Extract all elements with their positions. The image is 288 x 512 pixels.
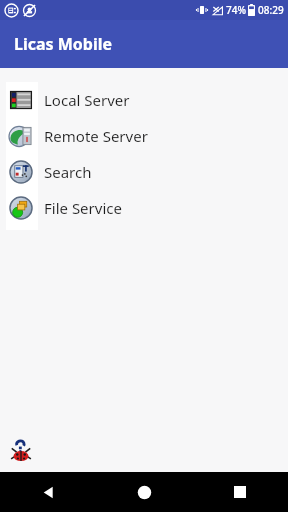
staticText: Search (44, 162, 92, 182)
button[interactable]: Recent apps (192, 472, 288, 512)
staticText: Remote Server (44, 126, 148, 146)
staticText: File Service (44, 198, 122, 218)
staticText: 74% (226, 3, 246, 17)
button[interactable]: Back (0, 472, 96, 512)
button[interactable]: Home (96, 472, 192, 512)
button[interactable]: Search (0, 154, 288, 190)
staticText: Licas Mobile (14, 33, 113, 55)
button[interactable]: File Service (0, 190, 288, 226)
button[interactable]: Licas Mobile (0, 20, 288, 68)
button[interactable]: Local Server (0, 82, 288, 118)
staticText: 08:29 (258, 3, 284, 17)
button[interactable]: Debug (10, 440, 32, 462)
button[interactable]: Remote Server (0, 118, 288, 154)
staticText: Local Server (44, 90, 130, 110)
